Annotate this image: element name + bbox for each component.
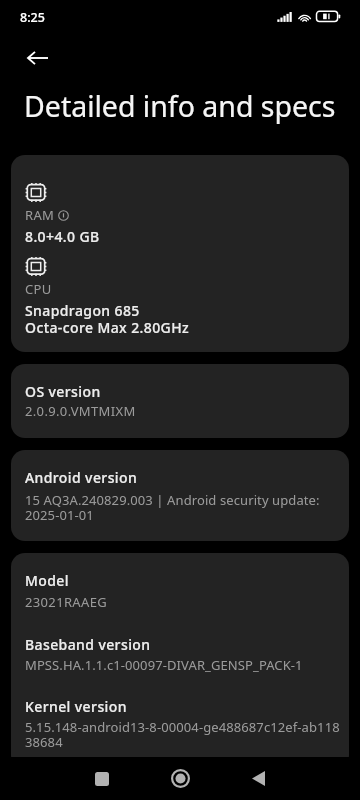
staticText: RAM — [25, 206, 55, 224]
button[interactable]: Recent apps — [63, 757, 141, 800]
staticText: OS version — [25, 382, 101, 401]
button[interactable]: Model — [11, 553, 349, 757]
button[interactable]: Home — [141, 757, 219, 800]
staticText: MPSS.HA.1.1.c1-00097-DIVAR_GENSP_PACK-1 — [25, 656, 303, 674]
staticText: 15 AQ3A.240829.003 | Android security up… — [25, 491, 320, 524]
button[interactable]: OS version — [11, 364, 349, 438]
staticText: 5.15.148-android13-8-00004-ge488687c12ef… — [25, 718, 340, 751]
button[interactable]: RAM — [11, 155, 349, 352]
staticText: Baseband version — [25, 635, 151, 654]
staticText: Snapdragon 685 Octa-core Max 2.80GHz — [25, 301, 190, 337]
staticText: 8.0+4.0 GB — [25, 227, 100, 246]
button[interactable]: Back — [219, 757, 297, 800]
staticText: 2.0.9.0.VMTMIXM — [25, 402, 136, 420]
button[interactable]: Android version — [11, 450, 349, 541]
button[interactable]: Back — [18, 39, 56, 77]
staticText: Android version — [25, 468, 138, 487]
staticText: Model — [25, 571, 69, 590]
staticText: CPU — [25, 280, 52, 298]
staticText: Detailed info and specs — [24, 87, 336, 126]
staticText: 8:25 — [20, 9, 45, 26]
staticText: Kernel version — [25, 697, 127, 716]
staticText: 23021RAAEG — [25, 593, 108, 611]
